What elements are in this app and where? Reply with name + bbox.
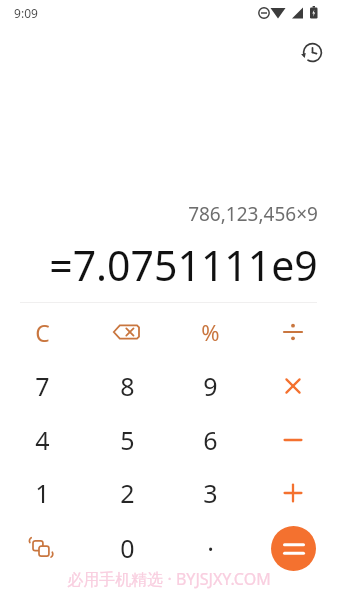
staticText: 3 [203,476,218,510]
button[interactable]: 5 [93,415,161,465]
staticText: 8 [120,369,135,403]
staticText: 786,123,456×9 [188,201,318,227]
staticText: 4 [35,423,50,457]
staticText: 6 [203,423,218,457]
button[interactable]: 4 [8,415,76,465]
button[interactable]: Unit converter [8,523,76,573]
staticText: 必用手机精选 · BYJSJXY.COM [67,568,271,590]
button[interactable]: 8 [93,361,161,411]
staticText: 2 [120,476,135,510]
staticText: · [207,531,214,565]
button[interactable]: 2 [93,468,161,518]
button[interactable]: % [176,307,244,357]
staticText: 9:09 [14,5,38,21]
button[interactable]: Divide [259,307,327,357]
button[interactable]: 9 [176,361,244,411]
button[interactable]: Equals [271,526,316,571]
staticText: 0 [120,531,135,565]
staticText: % [201,317,220,347]
staticText: C [35,317,50,348]
button[interactable]: 0 [93,523,161,573]
button[interactable]: Plus [259,468,327,518]
button[interactable]: 1 [8,468,76,518]
button[interactable]: Backspace [93,307,161,357]
button[interactable]: C [8,307,76,357]
button[interactable]: · [176,523,244,573]
staticText: 1 [35,476,50,510]
button[interactable]: Multiply [259,361,327,411]
button[interactable]: 3 [176,468,244,518]
staticText: 7 [35,369,50,403]
button[interactable]: Minus [259,415,327,465]
staticText: =7.0751111e9 [49,237,318,293]
button[interactable]: 6 [176,415,244,465]
staticText: 9 [203,369,218,403]
button[interactable]: 7 [8,361,76,411]
button[interactable]: History [293,33,331,71]
staticText: 5 [120,423,135,457]
